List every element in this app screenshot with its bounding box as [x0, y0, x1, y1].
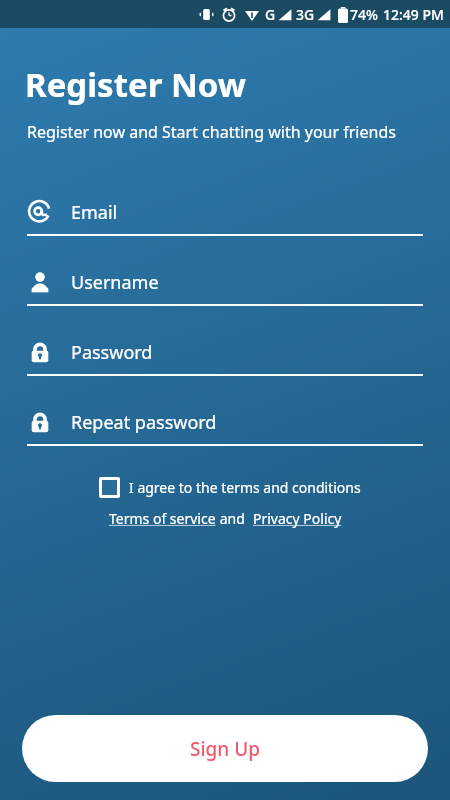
button[interactable]: Terms of service	[109, 509, 216, 528]
button[interactable]: Password	[27, 339, 423, 376]
staticText: Username	[71, 270, 159, 295]
other: Password	[27, 339, 53, 365]
button[interactable]: Username	[27, 269, 423, 306]
other: Username	[27, 269, 53, 295]
staticText: Password	[71, 340, 153, 365]
other: Repeat password	[27, 409, 53, 435]
staticText: 12:49 PM	[383, 5, 444, 24]
staticText: Repeat password	[71, 410, 217, 435]
staticText: 74%	[350, 5, 378, 24]
staticText: 3G	[296, 5, 315, 24]
button[interactable]: Privacy Policy	[253, 509, 342, 528]
staticText: and	[216, 509, 253, 528]
button[interactable]: Repeat password	[27, 409, 423, 446]
staticText: Sign Up	[190, 736, 261, 762]
button[interactable]: Sign Up	[22, 715, 428, 782]
staticText: Privacy Policy	[253, 509, 342, 528]
button[interactable]: I agree to the terms and conditions	[99, 477, 361, 498]
staticText: Register now and Start chatting with you…	[27, 121, 396, 143]
staticText: Terms of service	[109, 509, 216, 528]
staticText: Register Now	[25, 62, 247, 107]
button[interactable]: Email	[27, 199, 423, 236]
staticText: Email	[71, 200, 118, 225]
staticText: I agree to the terms and conditions	[129, 478, 361, 497]
other: Email	[27, 199, 53, 225]
staticText: G	[265, 5, 276, 24]
